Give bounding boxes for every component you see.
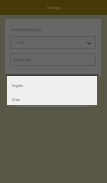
button[interactable]: Urdu xyxy=(10,36,96,49)
other: Open language list xyxy=(86,40,92,46)
staticText: Restart app xyxy=(13,57,32,62)
staticText: Change UI language xyxy=(11,28,42,32)
button[interactable]: Settings xyxy=(0,0,107,15)
button[interactable]: English xyxy=(7,78,97,92)
staticText: English xyxy=(12,83,24,87)
staticText: Urdu xyxy=(17,40,25,45)
staticText: Urdu xyxy=(12,97,20,101)
button[interactable]: Restart app xyxy=(10,53,96,66)
button[interactable]: Urdu xyxy=(7,92,97,105)
staticText: Settings xyxy=(47,5,61,10)
